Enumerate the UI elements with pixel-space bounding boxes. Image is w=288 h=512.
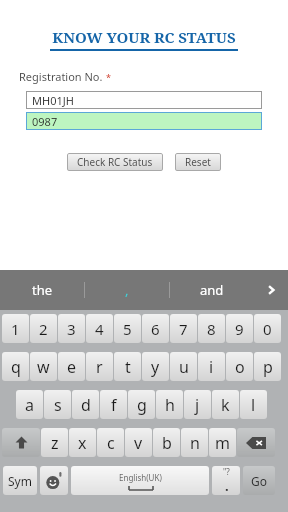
staticText: t: [125, 356, 131, 378]
staticText: h: [165, 394, 175, 416]
staticText: Reset: [185, 155, 211, 169]
button[interactable]: m: [209, 428, 236, 457]
button[interactable]: c: [97, 428, 124, 457]
staticText: x: [78, 432, 87, 454]
button[interactable]: the: [0, 270, 84, 310]
button[interactable]: u: [170, 352, 197, 381]
staticText: Sym: [8, 473, 32, 489]
button[interactable]: j: [184, 390, 211, 419]
button[interactable]: Space, English UK: [71, 466, 209, 495]
button[interactable]: y: [142, 352, 169, 381]
button[interactable]: w: [30, 352, 57, 381]
button[interactable]: z: [41, 428, 68, 457]
staticText: *: [106, 71, 111, 83]
button[interactable]: a: [16, 390, 43, 419]
button[interactable]: p: [254, 352, 281, 381]
staticText: ,: [125, 281, 129, 299]
button[interactable]: l: [240, 390, 267, 419]
button[interactable]: i: [198, 352, 225, 381]
button[interactable]: k: [212, 390, 239, 419]
button[interactable]: 7: [170, 314, 197, 343]
button[interactable]: Period and punctuation: [212, 466, 240, 495]
staticText: .: [225, 477, 229, 495]
staticText: f: [111, 394, 117, 416]
button[interactable]: 0: [254, 314, 281, 343]
button[interactable]: 4: [86, 314, 113, 343]
button[interactable]: and: [170, 270, 254, 310]
staticText: Registration No.: [19, 69, 103, 84]
button[interactable]: Emoji and voice input: [40, 466, 68, 495]
staticText: l: [251, 394, 256, 416]
button[interactable]: Check RC Status: [67, 153, 163, 171]
button[interactable]: Shift: [2, 428, 40, 457]
staticText: 0: [263, 319, 272, 339]
button[interactable]: More suggestions: [254, 270, 288, 310]
button[interactable]: Sym: [3, 466, 37, 495]
staticText: 4: [95, 319, 104, 339]
staticText: "?: [223, 466, 230, 477]
staticText: 1: [11, 319, 20, 339]
staticText: p: [263, 356, 273, 378]
staticText: y: [151, 356, 160, 378]
staticText: g: [137, 394, 147, 416]
staticText: 5: [123, 319, 132, 339]
button[interactable]: 2: [30, 314, 57, 343]
button[interactable]: h: [156, 390, 183, 419]
staticText: o: [235, 356, 245, 378]
staticText: the: [32, 281, 53, 299]
staticText: MH01JH: [32, 93, 74, 108]
button[interactable]: o: [226, 352, 253, 381]
staticText: z: [51, 432, 59, 454]
staticText: and: [200, 281, 224, 299]
staticText: 8: [207, 319, 216, 339]
button[interactable]: x: [69, 428, 96, 457]
button[interactable]: 9: [226, 314, 253, 343]
button[interactable]: 1: [2, 314, 29, 343]
button[interactable]: e: [58, 352, 85, 381]
button[interactable]: q: [2, 352, 29, 381]
staticText: 7: [179, 319, 188, 339]
staticText: d: [81, 394, 91, 416]
staticText: k: [221, 394, 230, 416]
button[interactable]: g: [128, 390, 155, 419]
staticText: Check RC Status: [77, 155, 153, 169]
staticText: 9: [235, 319, 244, 339]
button[interactable]: Reset: [175, 153, 221, 171]
button[interactable]: d: [72, 390, 99, 419]
staticText: m: [215, 432, 230, 454]
button[interactable]: 3: [58, 314, 85, 343]
staticText: 6: [151, 319, 160, 339]
button[interactable]: 0987: [26, 112, 262, 130]
staticText: e: [67, 356, 77, 378]
staticText: n: [190, 432, 200, 454]
button[interactable]: b: [153, 428, 180, 457]
staticText: Go: [251, 473, 267, 489]
staticText: w: [37, 356, 50, 378]
button[interactable]: r: [86, 352, 113, 381]
button[interactable]: 5: [114, 314, 141, 343]
button[interactable]: s: [44, 390, 71, 419]
button[interactable]: 6: [142, 314, 169, 343]
staticText: b: [162, 432, 172, 454]
button[interactable]: Backspace: [237, 428, 275, 457]
button[interactable]: n: [181, 428, 208, 457]
button[interactable]: f: [100, 390, 127, 419]
button[interactable]: Go: [243, 466, 275, 495]
staticText: a: [25, 394, 34, 416]
button[interactable]: v: [125, 428, 152, 457]
staticText: 3: [67, 319, 76, 339]
staticText: 2: [39, 319, 48, 339]
staticText: KNOW YOUR RC STATUS: [52, 27, 236, 47]
staticText: r: [96, 356, 103, 378]
button[interactable]: t: [114, 352, 141, 381]
staticText: i: [209, 356, 214, 378]
staticText: 0987: [32, 114, 58, 129]
button[interactable]: MH01JH: [26, 91, 262, 109]
staticText: u: [179, 356, 189, 378]
staticText: q: [11, 356, 21, 378]
staticText: j: [195, 394, 200, 416]
button[interactable]: 8: [198, 314, 225, 343]
staticText: c: [107, 432, 115, 454]
staticText: s: [54, 394, 62, 416]
